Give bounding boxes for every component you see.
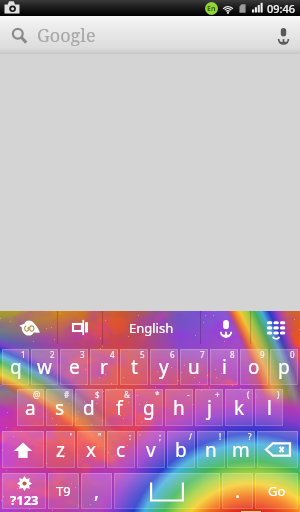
staticText: w bbox=[37, 354, 52, 380]
button[interactable]: Voice search bbox=[266, 16, 300, 54]
button[interactable]: ?123 bbox=[2, 473, 46, 509]
staticText: m bbox=[232, 437, 250, 463]
staticText: j bbox=[207, 395, 212, 421]
staticText: b bbox=[175, 437, 187, 463]
staticText: ) bbox=[277, 389, 280, 400]
button[interactable]: 4 bbox=[90, 349, 118, 385]
button[interactable]: ( bbox=[225, 389, 253, 426]
button[interactable]: 7 bbox=[180, 349, 208, 385]
button[interactable]: Switch keyboard bbox=[251, 311, 300, 344]
button[interactable]: 0 bbox=[270, 349, 298, 385]
staticText: 1 bbox=[21, 349, 26, 360]
button[interactable]: + bbox=[195, 389, 223, 426]
staticText: ; bbox=[159, 431, 162, 442]
staticText: : bbox=[129, 431, 132, 442]
staticText: e bbox=[69, 354, 80, 380]
staticText: - bbox=[187, 389, 190, 400]
staticText: s bbox=[55, 395, 65, 421]
staticText: f bbox=[116, 395, 123, 421]
button[interactable]: English bbox=[103, 311, 200, 344]
staticText: x bbox=[86, 437, 97, 463]
staticText: 7 bbox=[200, 349, 205, 360]
button[interactable]: . bbox=[222, 473, 253, 509]
button[interactable]: 9 bbox=[240, 349, 268, 385]
button[interactable]: ) bbox=[255, 389, 283, 426]
staticText: h bbox=[173, 395, 185, 421]
staticText: * bbox=[155, 389, 160, 400]
button[interactable]: Voice input bbox=[201, 311, 250, 344]
button[interactable]: T9 bbox=[48, 473, 79, 509]
button[interactable]: Shift bbox=[2, 431, 44, 468]
staticText: & bbox=[124, 389, 130, 400]
button[interactable]: Space bbox=[114, 473, 220, 509]
button[interactable]: & bbox=[105, 389, 133, 426]
button[interactable]: ! bbox=[197, 431, 225, 468]
button[interactable]: 5 bbox=[120, 349, 148, 385]
staticText: ' bbox=[70, 431, 72, 442]
button[interactable]: Delete bbox=[257, 431, 298, 468]
staticText: , bbox=[94, 478, 100, 504]
button[interactable]: " bbox=[77, 431, 105, 468]
button[interactable]: # bbox=[46, 389, 73, 426]
staticText: 5 bbox=[140, 349, 145, 360]
staticText: 0 bbox=[290, 349, 295, 360]
staticText: Go bbox=[268, 482, 286, 500]
button[interactable]: : bbox=[107, 431, 135, 468]
staticText: k bbox=[234, 395, 245, 421]
staticText: o bbox=[248, 354, 260, 380]
staticText: d bbox=[83, 395, 95, 421]
staticText: T9 bbox=[56, 482, 71, 500]
staticText: English bbox=[129, 319, 174, 337]
button[interactable]: 1 bbox=[2, 349, 29, 385]
staticText: + bbox=[215, 389, 220, 400]
staticText: l bbox=[267, 395, 272, 421]
staticText: n bbox=[205, 437, 217, 463]
staticText: ( bbox=[247, 389, 250, 400]
button[interactable]: 3 bbox=[60, 349, 88, 385]
staticText: t bbox=[131, 354, 138, 380]
staticText: " bbox=[98, 431, 102, 442]
staticText: p bbox=[278, 354, 290, 380]
staticText: # bbox=[64, 389, 70, 400]
staticText: 6 bbox=[170, 349, 175, 360]
button[interactable] bbox=[0, 16, 300, 54]
button[interactable]: @ bbox=[17, 389, 44, 426]
button[interactable]: 8 bbox=[210, 349, 238, 385]
staticText: c bbox=[116, 437, 126, 463]
staticText: 8 bbox=[230, 349, 235, 360]
button[interactable]: $ bbox=[75, 389, 103, 426]
button[interactable]: - bbox=[165, 389, 193, 426]
button[interactable]: ; bbox=[137, 431, 165, 468]
staticText: $ bbox=[95, 389, 100, 400]
button[interactable]: Go bbox=[255, 473, 298, 509]
button[interactable]: 6 bbox=[150, 349, 178, 385]
button[interactable]: , bbox=[81, 473, 112, 509]
staticText: a bbox=[25, 395, 36, 421]
staticText: . bbox=[235, 478, 241, 504]
button[interactable]: ? bbox=[227, 431, 255, 468]
staticText: 4 bbox=[110, 349, 115, 360]
staticText: En bbox=[207, 4, 216, 14]
staticText: ? bbox=[248, 431, 252, 442]
button[interactable]: GO keyboard menu bbox=[0, 311, 57, 344]
staticText: v bbox=[146, 437, 156, 463]
button[interactable]: ' bbox=[46, 431, 75, 468]
staticText: y bbox=[159, 354, 169, 380]
staticText: u bbox=[188, 354, 200, 380]
staticText: 3 bbox=[80, 349, 85, 360]
staticText: r bbox=[100, 354, 108, 380]
staticText: 2 bbox=[50, 349, 55, 360]
button[interactable]: 2 bbox=[31, 349, 58, 385]
staticText: q bbox=[10, 354, 22, 380]
staticText: g bbox=[143, 395, 155, 421]
staticText: 9 bbox=[260, 349, 265, 360]
staticText: i bbox=[222, 354, 227, 380]
staticText: z bbox=[56, 437, 65, 463]
button[interactable]: * bbox=[135, 389, 163, 426]
button[interactable]: / bbox=[167, 431, 195, 468]
staticText: 09:46 bbox=[267, 1, 296, 16]
button[interactable]: Theme bbox=[58, 311, 102, 344]
staticText: / bbox=[189, 431, 192, 442]
staticText: ?123 bbox=[10, 491, 39, 509]
staticText: Google bbox=[37, 23, 96, 48]
